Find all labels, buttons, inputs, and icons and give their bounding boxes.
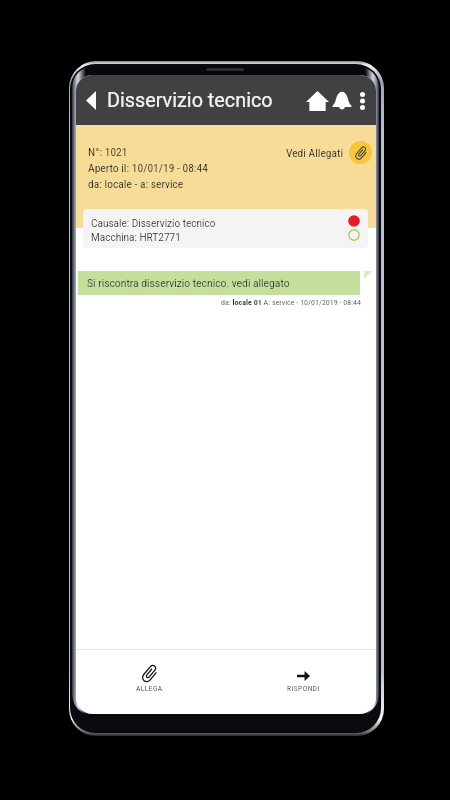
staticText: da: locale - a: service <box>88 177 184 190</box>
staticText: Vedi Allegati <box>286 146 344 159</box>
button[interactable]: RISPONDI <box>260 650 346 714</box>
button[interactable]: Vedi Allegati <box>286 141 372 164</box>
button[interactable]: ALLEGA <box>106 650 192 714</box>
staticText: Si riscontra disservizio tecnico. vedi a… <box>87 277 290 289</box>
button[interactable]: Home <box>295 80 340 121</box>
button[interactable]: Back <box>76 80 111 120</box>
button[interactable]: Causale: Disservizio tecnico <box>83 209 368 248</box>
staticText: Aperto il: 10/01/19 - 08:44 <box>88 161 208 174</box>
staticText: N°: 1021 <box>88 145 128 158</box>
button[interactable]: More options <box>348 80 376 121</box>
staticText: Causale: Disservizio tecnico <box>91 218 216 230</box>
button[interactable]: Notifications <box>326 80 358 121</box>
staticText: Disservizio tecnico <box>107 89 273 112</box>
staticText: da: locale 01 A: service - 10/01/2019 - … <box>221 298 361 307</box>
staticText: RISPONDI <box>287 684 320 693</box>
staticText: Macchina: HRT2771 <box>91 232 181 244</box>
staticText: ALLEGA <box>136 684 163 693</box>
